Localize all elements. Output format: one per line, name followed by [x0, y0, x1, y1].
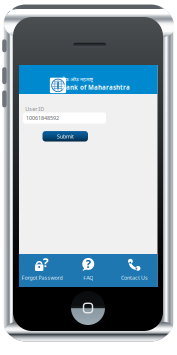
staticText: User ID	[25, 105, 44, 113]
staticText: 10061848592	[26, 114, 59, 122]
staticText: ?	[43, 254, 49, 271]
staticText: FAQ	[83, 274, 93, 281]
button[interactable]: Submit	[42, 131, 88, 142]
staticText: ?	[86, 257, 91, 271]
button[interactable]: ?	[19, 254, 65, 287]
button[interactable]: Contact Us	[111, 254, 157, 287]
staticText: बैंक ऑफ महाराष्ट्र	[62, 76, 93, 83]
button[interactable]: ?	[65, 254, 111, 287]
staticText: Forgot Password	[22, 274, 63, 281]
staticText: Contact Us	[121, 274, 148, 281]
staticText: Bank of Maharashtra	[62, 83, 130, 92]
staticText: Submit	[57, 132, 74, 140]
